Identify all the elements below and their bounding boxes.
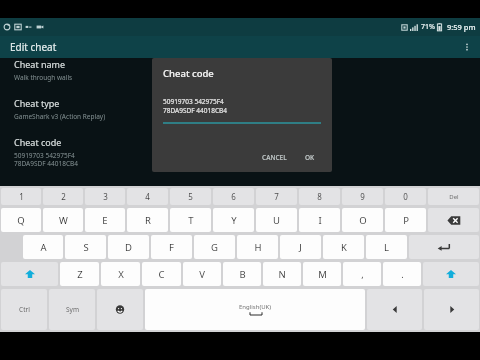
- button[interactable]: 0: [385, 188, 426, 205]
- staticText: 2: [61, 191, 66, 202]
- button[interactable]: B: [223, 262, 261, 286]
- button[interactable]: 9: [342, 188, 383, 205]
- button[interactable]: 2: [43, 188, 83, 205]
- staticText: GameShark v3 (Action Replay): [14, 112, 106, 121]
- button[interactable]: Shift: [1, 262, 58, 286]
- staticText: 9: [360, 191, 365, 202]
- button[interactable]: G: [194, 235, 235, 259]
- button[interactable]: 1: [1, 188, 41, 205]
- staticText: J: [299, 241, 302, 254]
- staticText: 71%: [421, 22, 435, 32]
- button[interactable]: 5: [170, 188, 211, 205]
- button[interactable]: H: [237, 235, 278, 259]
- button[interactable]: I: [299, 208, 340, 232]
- staticText: M: [318, 268, 327, 281]
- staticText: CANCEL: [262, 153, 287, 162]
- button[interactable]: Shift: [423, 262, 479, 286]
- button[interactable]: Cheat name: [14, 58, 466, 82]
- staticText: H: [254, 241, 262, 254]
- staticText: Sym: [66, 305, 79, 314]
- staticText: E: [102, 214, 108, 227]
- button[interactable]: X: [101, 262, 140, 286]
- staticText: X: [118, 268, 124, 281]
- staticText: A: [40, 241, 47, 254]
- staticText: Q: [17, 214, 25, 227]
- staticText: Edit cheat: [10, 40, 57, 54]
- button[interactable]: 7: [256, 188, 297, 205]
- staticText: Cheat code: [14, 136, 62, 148]
- button[interactable]: Y: [213, 208, 254, 232]
- staticText: I: [318, 214, 322, 227]
- button[interactable]: P: [385, 208, 426, 232]
- button[interactable]: Enter: [409, 235, 479, 259]
- button[interactable]: U: [256, 208, 297, 232]
- button[interactable]: L: [366, 235, 407, 259]
- staticText: .: [401, 268, 404, 280]
- button[interactable]: Navigate up: [8, 38, 59, 56]
- button[interactable]: Cheat type: [14, 97, 466, 121]
- button[interactable]: N: [263, 262, 301, 286]
- button[interactable]: .: [383, 262, 421, 286]
- staticText: S: [83, 241, 89, 254]
- button[interactable]: O: [342, 208, 383, 232]
- staticText: Y: [231, 214, 237, 227]
- button[interactable]: 8: [299, 188, 340, 205]
- button[interactable]: Space: [145, 289, 365, 330]
- staticText: Cheat type: [14, 97, 60, 109]
- staticText: 1: [19, 191, 24, 202]
- staticText: W: [59, 214, 68, 227]
- button[interactable]: D: [108, 235, 149, 259]
- button[interactable]: C: [142, 262, 181, 286]
- staticText: 7: [274, 191, 279, 202]
- button[interactable]: Cursor right: [424, 289, 479, 330]
- staticText: U: [273, 214, 280, 227]
- staticText: Ctrl: [19, 305, 30, 314]
- staticText: V: [199, 268, 205, 281]
- staticText: G: [211, 241, 218, 254]
- staticText: 6: [231, 191, 236, 202]
- button[interactable]: Cursor left: [367, 289, 422, 330]
- staticText: D: [125, 241, 132, 254]
- button[interactable]: S: [65, 235, 106, 259]
- button[interactable]: Q: [1, 208, 41, 232]
- staticText: T: [188, 214, 194, 227]
- staticText: ,: [361, 268, 364, 280]
- button[interactable]: A: [23, 235, 63, 259]
- staticText: F: [169, 241, 174, 254]
- staticText: O: [359, 214, 367, 227]
- button[interactable]: R: [127, 208, 168, 232]
- button[interactable]: J: [280, 235, 321, 259]
- button[interactable]: 4: [127, 188, 168, 205]
- button[interactable]: OK: [299, 150, 321, 165]
- staticText: English(UK): [239, 303, 272, 311]
- button[interactable]: CANCEL: [256, 150, 293, 165]
- button[interactable]: T: [170, 208, 211, 232]
- button[interactable]: F: [151, 235, 192, 259]
- staticText: 8: [317, 191, 322, 202]
- button[interactable]: Ctrl: [1, 289, 47, 330]
- staticText: C: [158, 268, 165, 281]
- staticText: 50919703 542975F4 78DA9SDF 44018CB4: [163, 97, 227, 115]
- staticText: 5: [188, 191, 193, 202]
- staticText: Z: [77, 268, 83, 281]
- staticText: Cheat code: [163, 67, 214, 80]
- button[interactable]: K: [323, 235, 364, 259]
- button[interactable]: M: [303, 262, 341, 286]
- button[interactable]: More options: [458, 38, 476, 56]
- button[interactable]: V: [183, 262, 221, 286]
- button[interactable]: E: [85, 208, 125, 232]
- staticText: Cheat name: [14, 58, 66, 70]
- button[interactable]: Backspace: [428, 208, 479, 232]
- button[interactable]: Sym: [49, 289, 95, 330]
- button[interactable]: Cheat code: [14, 136, 466, 168]
- button[interactable]: W: [43, 208, 83, 232]
- staticText: P: [403, 214, 409, 227]
- button[interactable]: Emoji: [97, 289, 143, 330]
- button[interactable]: ,: [343, 262, 381, 286]
- button[interactable]: 3: [85, 188, 125, 205]
- button[interactable]: Z: [60, 262, 99, 286]
- button[interactable]: Del: [428, 188, 479, 205]
- button[interactable]: 6: [213, 188, 254, 205]
- staticText: 50919703 542975F4 78DA9SDF 44018CB4: [14, 151, 78, 168]
- staticText: L: [384, 241, 389, 254]
